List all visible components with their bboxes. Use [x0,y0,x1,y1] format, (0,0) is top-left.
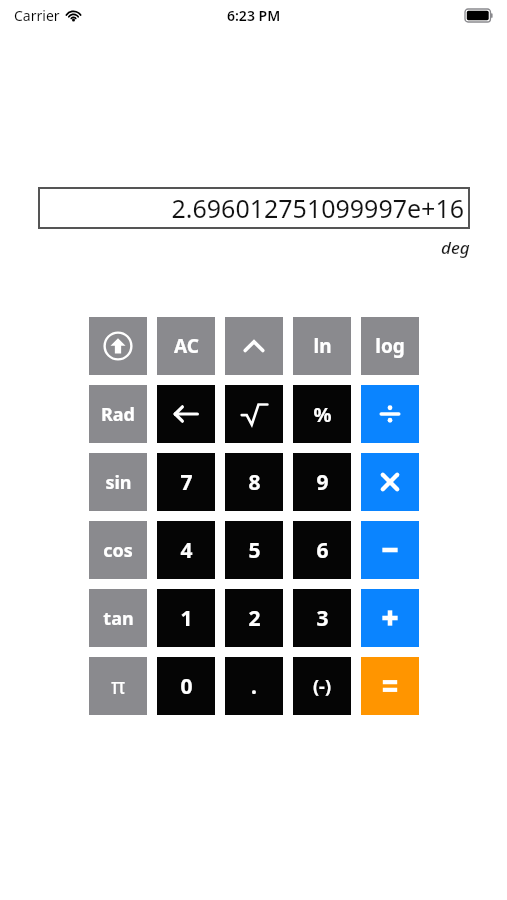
staticText: ln [313,333,332,359]
button[interactable]: 2.696012751099997e+16 [38,187,470,229]
staticText: Rad [101,402,135,427]
button[interactable]: 1 [157,589,215,647]
staticText: 6 [316,536,329,565]
button[interactable]: Multiply [361,453,419,511]
staticText: 3 [316,604,329,633]
button[interactable]: 9 [293,453,351,511]
button[interactable]: ln [293,317,351,375]
button[interactable]: deg [441,236,470,259]
button[interactable]: 7 [157,453,215,511]
button[interactable]: 3 [293,589,351,647]
staticText: 1 [180,604,193,633]
staticText: 2.696012751099997e+16 [171,191,464,225]
button[interactable]: Backspace [157,385,215,443]
button[interactable]: 6 [293,521,351,579]
button[interactable]: 5 [225,521,283,579]
button[interactable]: cos [89,521,147,579]
staticText: . [251,672,257,701]
staticText: 8 [248,468,261,497]
staticText: π [111,672,125,701]
button[interactable]: Shift [89,317,147,375]
button[interactable]: 0 [157,657,215,715]
button[interactable]: π [89,657,147,715]
button[interactable]: (-) [293,657,351,715]
button[interactable]: . [225,657,283,715]
button[interactable]: Square root [225,385,283,443]
staticText: tan [103,606,134,631]
staticText: 4 [180,536,193,565]
staticText: 6:23 PM [227,6,281,25]
staticText: 5 [248,536,261,565]
staticText: Carrier [14,6,60,25]
button[interactable]: Minus [361,521,419,579]
button[interactable]: Divide [361,385,419,443]
staticText: cos [103,538,133,563]
button[interactable]: Plus [361,589,419,647]
button[interactable]: AC [157,317,215,375]
button[interactable]: % [293,385,351,443]
staticText: 7 [180,468,193,497]
button[interactable]: 4 [157,521,215,579]
staticText: log [375,333,405,359]
staticText: AC [174,333,199,359]
staticText: (-) [313,674,331,699]
staticText: sin [105,470,132,495]
button[interactable]: 2 [225,589,283,647]
button[interactable]: Rad [89,385,147,443]
staticText: 9 [316,468,329,497]
staticText: 2 [248,604,261,633]
button[interactable]: tan [89,589,147,647]
button[interactable]: 8 [225,453,283,511]
button[interactable]: Equals [361,657,419,715]
button[interactable]: sin [89,453,147,511]
staticText: 0 [180,672,193,701]
staticText: % [313,401,332,428]
button[interactable]: Power [225,317,283,375]
button[interactable]: log [361,317,419,375]
